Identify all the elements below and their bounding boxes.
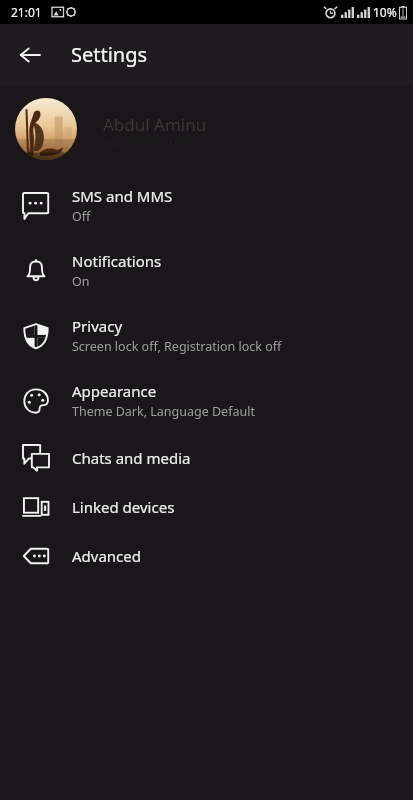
staticText: Chats and media [72,448,191,468]
staticText: Settings [71,41,148,68]
staticText: Abdul Aminu [103,113,207,136]
staticText: Linked devices [72,497,175,517]
staticText: Theme Dark, Language Default [72,403,255,420]
staticText: Off [72,208,91,225]
staticText: Screen lock off, Registration lock off [72,338,282,355]
button[interactable]: Linked devices [0,482,413,531]
staticText: 21:01 [11,4,42,20]
button[interactable]: Chats and media [0,433,413,482]
button[interactable]: Notifications [0,238,413,303]
button[interactable]: Advanced [0,531,413,580]
staticText: Appearance [72,381,157,401]
button[interactable]: Abdul Aminu [0,85,413,173]
staticText: Privacy [72,316,123,336]
button[interactable]: Privacy [0,303,413,368]
button[interactable]: Back [8,33,52,77]
staticText: SMS and MMS [72,186,173,206]
button[interactable]: Appearance [0,368,413,433]
staticText: Notifications [72,251,162,271]
staticText: 10% [373,4,397,20]
button[interactable]: SMS and MMS [0,173,413,238]
staticText: Advanced [72,546,142,566]
staticText: On [72,273,90,290]
